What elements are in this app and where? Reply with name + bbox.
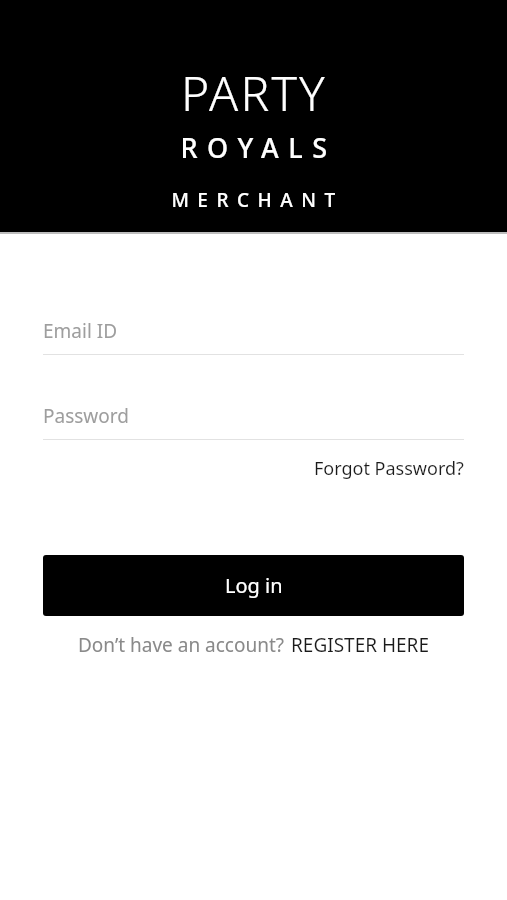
staticText: PARTY — [181, 60, 327, 125]
button[interactable]: Email ID — [43, 318, 464, 355]
staticText: Forgot Password? — [314, 456, 464, 481]
staticText: Log in — [225, 572, 283, 599]
button[interactable]: Log in — [43, 555, 464, 616]
staticText: ROYALS — [180, 129, 337, 166]
button[interactable]: Password — [43, 403, 464, 440]
staticText: MERCHANT — [171, 187, 344, 213]
staticText: Password — [43, 403, 129, 429]
staticText: REGISTER HERE — [291, 632, 429, 658]
button[interactable]: Forgot Password? — [314, 454, 464, 483]
staticText: Email ID — [43, 318, 118, 344]
button[interactable]: REGISTER HERE — [291, 630, 429, 660]
staticText: Don’t have an account? — [78, 632, 285, 658]
